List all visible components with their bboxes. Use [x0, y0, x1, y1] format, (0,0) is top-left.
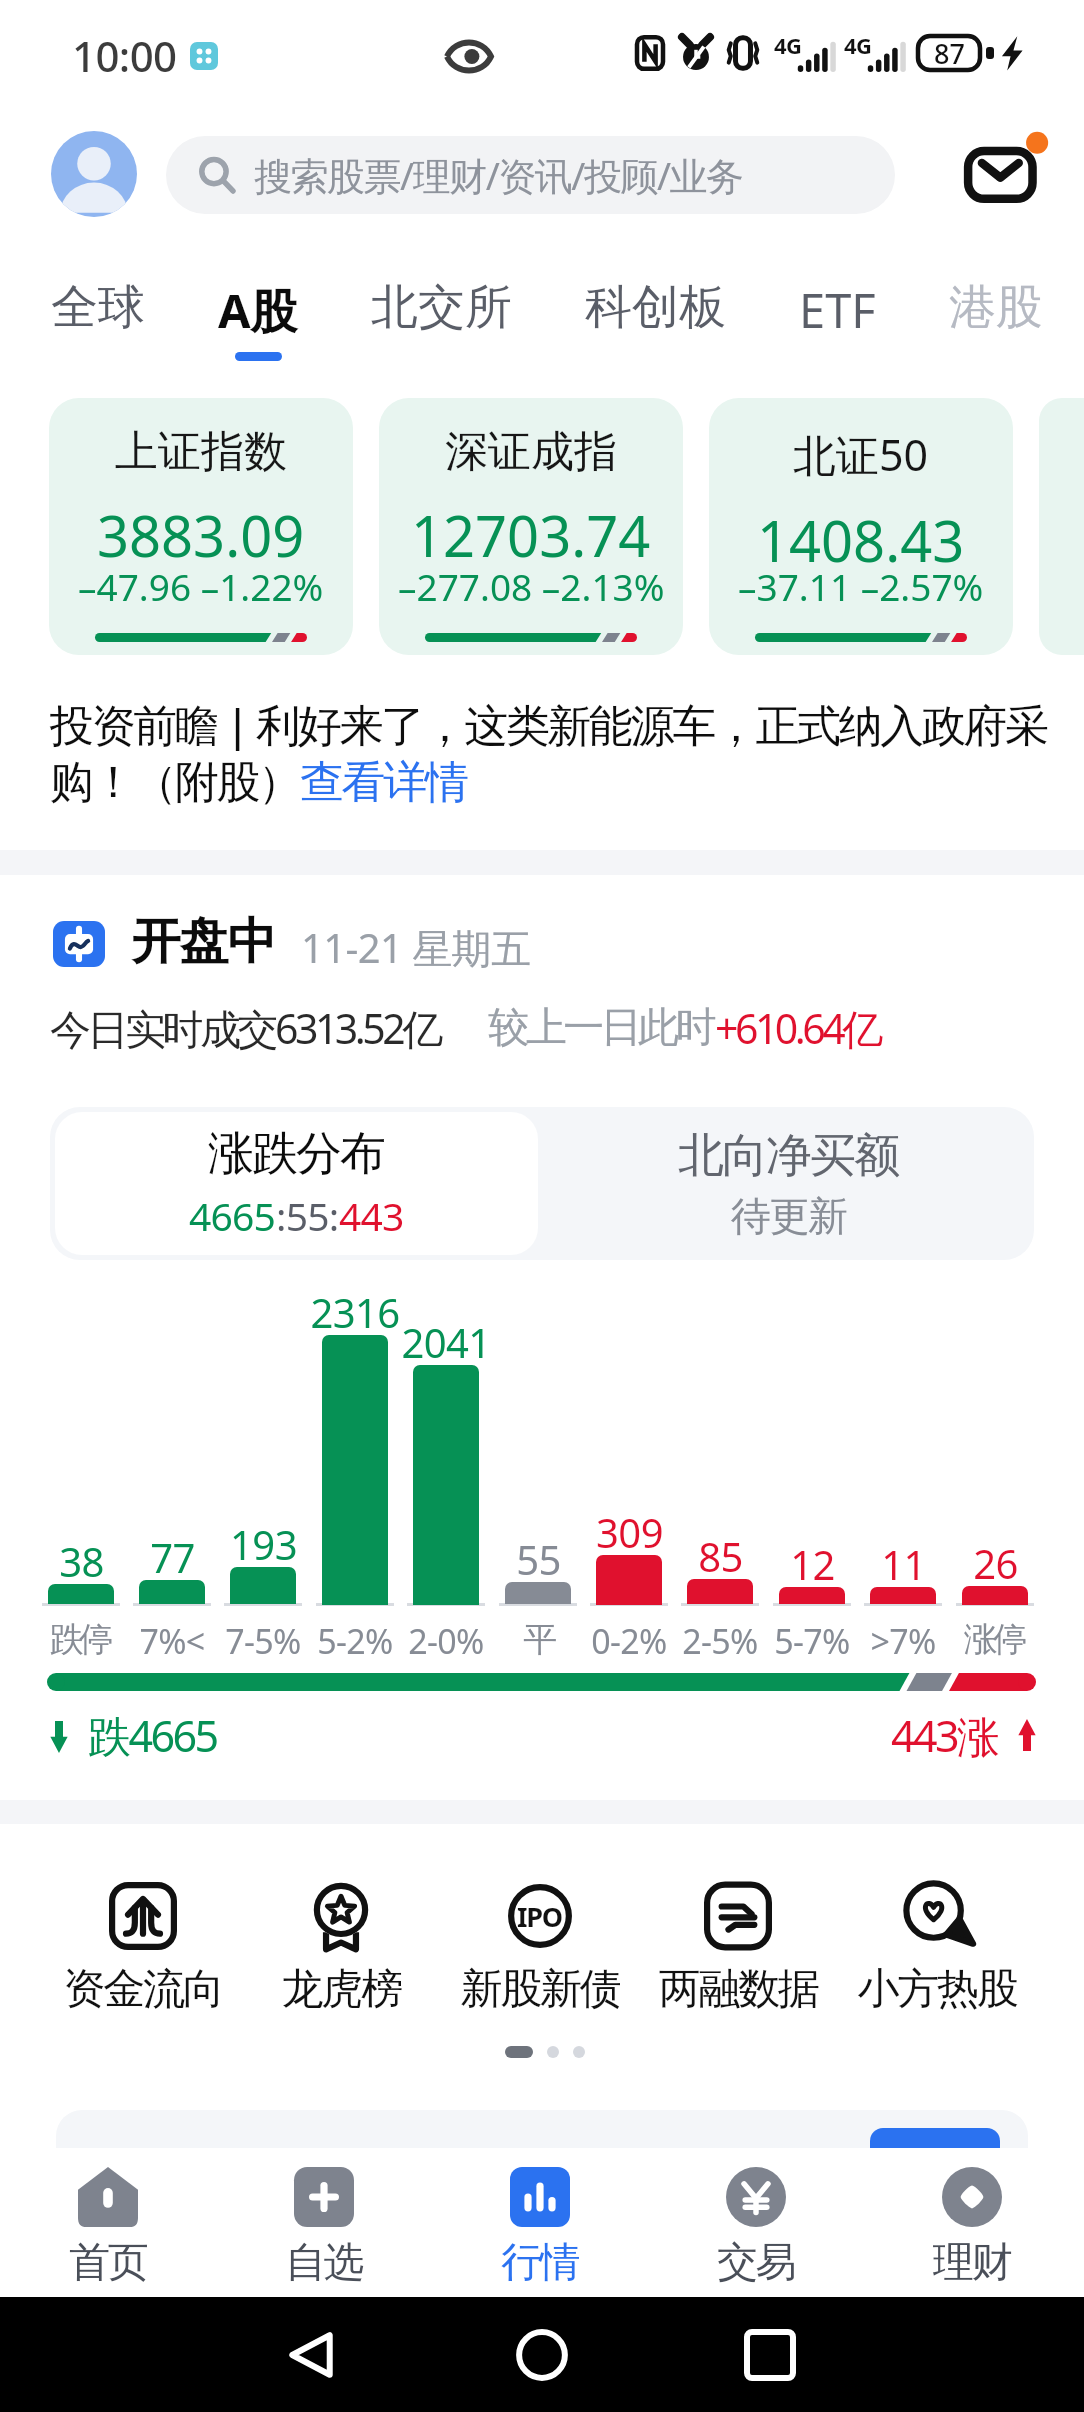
staticText: 77	[150, 1530, 195, 1584]
staticText: IPO	[517, 1898, 563, 1935]
button[interactable]: 交易	[647, 2152, 863, 2297]
button[interactable]: 北交所	[371, 278, 512, 378]
staticText: 今日实时成交6313.52亿	[50, 1000, 440, 1056]
staticText: –277.08 –2.13%	[398, 561, 665, 611]
staticText: 85	[698, 1529, 743, 1583]
staticText: 小方热股	[857, 1963, 1017, 2016]
staticText: 自选	[285, 2237, 362, 2289]
staticText: 4G	[774, 30, 802, 60]
staticText: 北证50	[793, 425, 929, 484]
staticText: ETF	[799, 278, 876, 342]
staticText: 309	[596, 1505, 663, 1559]
button[interactable]: 小方热股	[837, 1963, 1037, 2016]
staticText: 2041	[401, 1315, 491, 1369]
staticText: 55	[516, 1532, 561, 1586]
button[interactable]: Action	[870, 2128, 1000, 2154]
staticText: 5-2%	[317, 1618, 393, 1664]
staticText: 涨停	[966, 1618, 1025, 1661]
staticText: A股	[218, 278, 298, 342]
staticText: 0-2%	[591, 1618, 667, 1664]
staticText: 科创板	[585, 278, 726, 337]
staticText: 平	[523, 1618, 553, 1661]
staticText: 12703.74	[411, 497, 651, 573]
button[interactable]: 两融数据	[704, 1882, 772, 1950]
button[interactable]: 龙虎榜	[241, 1963, 441, 2016]
button[interactable]: 行情	[431, 2152, 647, 2297]
staticText: 搜索股票/理财/资讯/投顾/业务	[254, 149, 743, 201]
button[interactable]: Recents	[724, 2315, 816, 2395]
staticText: 跌停	[52, 1618, 111, 1661]
staticText: 行情	[501, 2237, 578, 2289]
button[interactable]: Profile	[51, 131, 137, 217]
button[interactable]: 自选	[215, 2152, 431, 2297]
staticText: 两融数据	[658, 1963, 818, 2016]
button[interactable]: 资金流向	[43, 1963, 243, 2016]
button[interactable]: 深证成指	[379, 398, 683, 655]
staticText: 10:00	[72, 27, 177, 84]
staticText: 投资前瞻 | 利好来了，这类新能源车，正式纳入政府采	[50, 694, 1047, 754]
staticText: 2-0%	[408, 1618, 484, 1664]
button[interactable]: Home	[496, 2315, 588, 2395]
staticText: 首页	[69, 2237, 146, 2289]
button[interactable]: 理财	[863, 2152, 1079, 2297]
staticText: :55:	[276, 1189, 339, 1242]
staticText: 涨跌分布	[209, 1125, 385, 1183]
staticText: 港股	[949, 278, 1043, 337]
staticText: 交易	[717, 2237, 794, 2289]
staticText: 12	[790, 1537, 835, 1591]
button[interactable]: Messages	[958, 128, 1050, 220]
button[interactable]: 港股	[949, 278, 1043, 378]
staticText: 新股新债	[460, 1963, 620, 2016]
staticText: –47.96 –1.22%	[78, 561, 324, 611]
staticText: 4G	[844, 30, 872, 60]
staticText: 开盘中	[132, 911, 276, 973]
button[interactable]: 新股新债	[506, 1882, 574, 1950]
button[interactable]: 首页	[0, 2152, 215, 2297]
staticText: 深证成指	[445, 425, 617, 479]
button[interactable]: 全球	[51, 278, 145, 378]
button[interactable]: 资金流向	[109, 1882, 177, 1950]
button[interactable]: A股	[218, 278, 298, 378]
button[interactable]: 北证50	[709, 398, 1013, 655]
staticText: 全球	[51, 278, 145, 337]
button[interactable]: 查看详情	[300, 755, 467, 810]
button[interactable]: 两融数据	[638, 1963, 838, 2016]
staticText: 北交所	[371, 278, 512, 337]
staticText: 2-5%	[682, 1618, 758, 1664]
staticText: 26	[973, 1536, 1018, 1590]
button[interactable]: More	[56, 2110, 1028, 2154]
staticText: 跌4665	[88, 1706, 217, 1765]
button[interactable]: 新股新债	[440, 1963, 640, 2016]
staticText: 4665	[189, 1189, 276, 1242]
staticText: 购！（附股）	[50, 755, 300, 810]
staticText: 87	[934, 35, 965, 72]
staticText: 3883.09	[97, 497, 305, 573]
staticText: 查看详情	[300, 755, 467, 810]
button[interactable]: Back	[265, 2315, 357, 2395]
button[interactable]: 小方热股	[903, 1882, 971, 1950]
button[interactable]: 涨跌分布	[55, 1112, 538, 1255]
button[interactable]: 搜索股票/理财/资讯/投顾/业务	[166, 136, 895, 214]
button[interactable]: 上证指数	[49, 398, 353, 655]
button[interactable]: 北向净买额	[543, 1107, 1034, 1260]
staticText: 龙虎榜	[281, 1963, 401, 2016]
staticText: 11-21 星期五	[301, 920, 531, 975]
staticText: +610.64亿	[715, 1000, 880, 1056]
button[interactable]: 科创板	[585, 278, 726, 378]
staticText: 5-7%	[774, 1618, 850, 1664]
staticText: –37.11 –2.57%	[738, 561, 984, 611]
staticText: 1408.43	[757, 502, 965, 578]
button[interactable]: ETF	[799, 278, 876, 378]
staticText: 北向净买额	[679, 1127, 899, 1185]
staticText: 2316	[310, 1285, 400, 1339]
staticText: 资金流向	[63, 1963, 223, 2016]
button[interactable]: 龙虎榜	[307, 1882, 375, 1950]
staticText: 较上一日此时	[490, 1002, 715, 1054]
staticText: 443涨	[891, 1706, 998, 1765]
staticText: 193	[230, 1517, 297, 1571]
staticText: 38	[59, 1534, 104, 1588]
staticText: 11	[881, 1537, 926, 1591]
staticText: >7%	[870, 1618, 936, 1664]
staticText: 7%<	[139, 1618, 205, 1664]
staticText: 理财	[933, 2237, 1010, 2289]
